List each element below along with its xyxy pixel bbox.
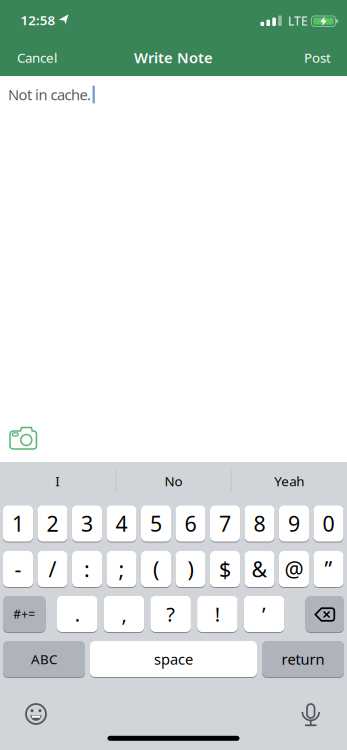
staticText: space xyxy=(154,649,193,669)
staticText: 12:58 xyxy=(20,11,56,29)
staticText: #+= xyxy=(13,606,35,622)
staticText: ; xyxy=(118,555,124,583)
staticText: return xyxy=(281,649,324,669)
staticText: No xyxy=(164,472,182,490)
staticText: ( xyxy=(153,555,159,583)
staticText: 3 xyxy=(81,509,93,538)
staticText: Cancel xyxy=(17,49,57,66)
staticText: I xyxy=(55,472,60,490)
staticText: / xyxy=(48,555,56,583)
staticText: ? xyxy=(166,601,175,627)
staticText: Post xyxy=(304,49,331,66)
staticText: $ xyxy=(219,555,231,583)
staticText: : xyxy=(84,555,90,583)
staticText: ! xyxy=(215,601,220,627)
staticText: ABC xyxy=(31,650,57,668)
staticText: LTE xyxy=(288,13,308,29)
staticText: Write Note xyxy=(134,48,213,67)
staticText: . xyxy=(75,601,80,627)
staticText: 8 xyxy=(253,509,265,538)
staticText: ) xyxy=(187,555,193,583)
staticText: 7 xyxy=(219,509,231,538)
staticText: , xyxy=(121,601,126,627)
staticText: 1 xyxy=(12,509,24,538)
staticText: @ xyxy=(284,555,303,583)
staticText: & xyxy=(251,555,267,583)
staticText: 9 xyxy=(288,509,300,538)
staticText: Not in cache. xyxy=(8,85,91,104)
staticText: ’ xyxy=(262,601,266,627)
staticText: - xyxy=(14,555,21,583)
staticText: 4 xyxy=(115,509,127,538)
staticText: 0 xyxy=(322,509,334,538)
staticText: Yeah xyxy=(274,472,304,490)
staticText: ” xyxy=(324,555,332,583)
staticText: 2 xyxy=(46,509,58,538)
staticText: 5 xyxy=(150,509,162,538)
staticText: 6 xyxy=(184,509,196,538)
